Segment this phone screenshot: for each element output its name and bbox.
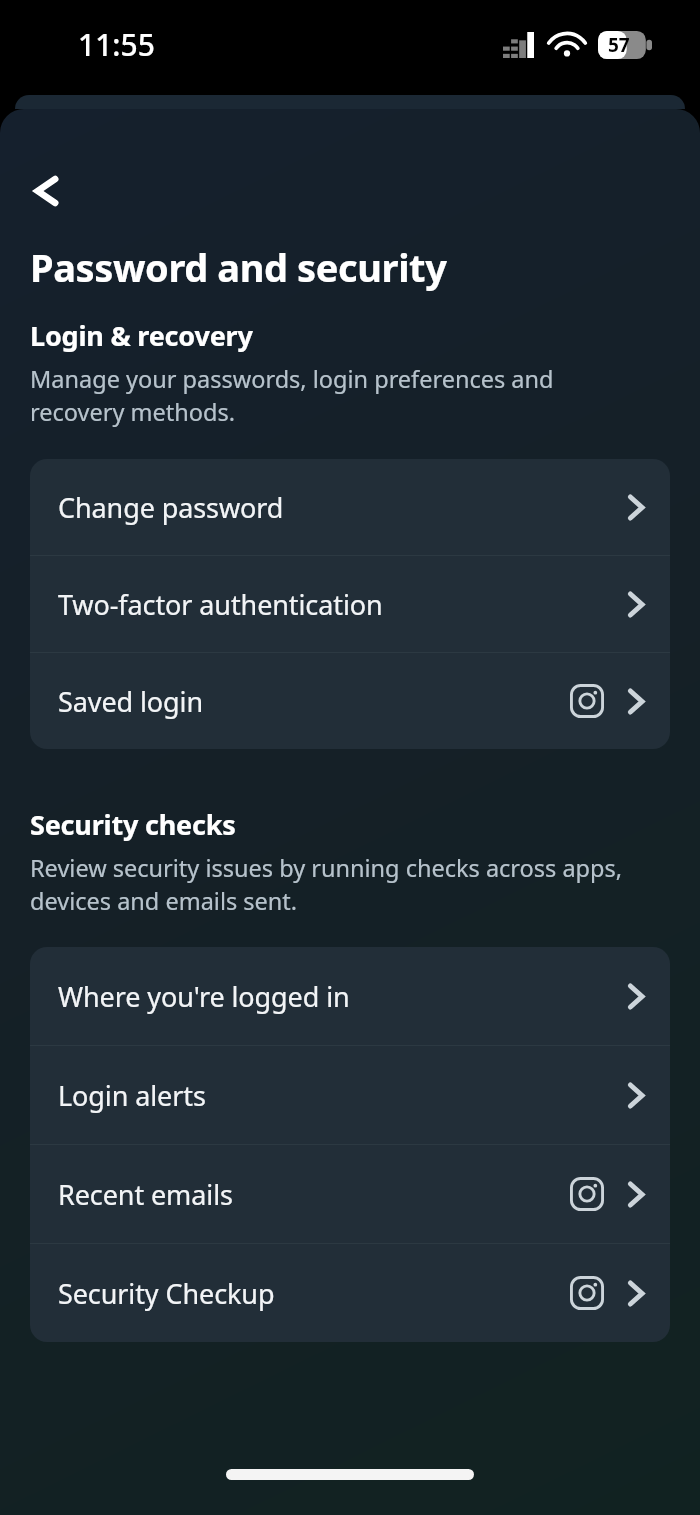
- button[interactable]: Back: [16, 161, 76, 221]
- button[interactable]: Recent emails: [30, 1145, 670, 1243]
- button[interactable]: Login alerts: [30, 1046, 670, 1144]
- staticText: Review security issues by running checks…: [30, 852, 648, 917]
- staticText: Password and security: [30, 241, 447, 293]
- button[interactable]: Saved login: [30, 653, 670, 749]
- button[interactable]: Where you're logged in: [30, 947, 670, 1045]
- staticText: 57: [608, 32, 630, 58]
- staticText: Recent emails: [58, 1176, 233, 1213]
- button[interactable]: Two-factor authentication: [30, 556, 670, 652]
- staticText: Login & recovery: [30, 317, 253, 354]
- staticText: Where you're logged in: [58, 978, 350, 1015]
- staticText: Security Checkup: [58, 1275, 275, 1312]
- staticText: Security checks: [30, 806, 236, 843]
- staticText: Manage your passwords, login preferences…: [30, 363, 648, 428]
- button[interactable]: Change password: [30, 459, 670, 555]
- staticText: Login alerts: [58, 1077, 206, 1114]
- staticText: Two-factor authentication: [58, 586, 383, 623]
- staticText: 11:55: [78, 24, 155, 65]
- staticText: Change password: [58, 489, 284, 526]
- button[interactable]: Security Checkup: [30, 1244, 670, 1342]
- staticText: Saved login: [58, 683, 203, 720]
